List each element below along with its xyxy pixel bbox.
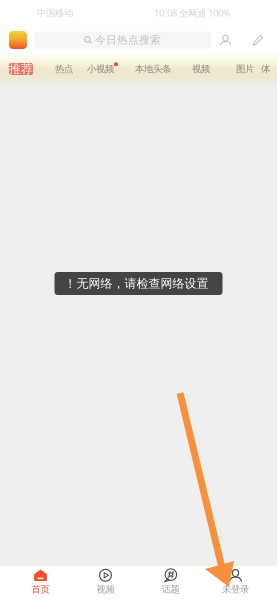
button[interactable]: 图片 [236,63,254,75]
staticText: 无网络，请检查网络设置 [76,276,208,291]
staticText: 推荐 [9,62,33,76]
button[interactable]: 视频 [73,566,138,600]
staticText: 视频 [96,584,114,595]
button[interactable]: 首页 [8,566,73,600]
staticText: 热点 [55,63,73,75]
staticText: 今日热点搜索 [95,33,161,46]
button[interactable]: 热点 [55,63,73,75]
button[interactable]: 发布 [252,34,263,45]
staticText: 视频 [192,63,210,75]
staticText: 未登录 [222,584,249,595]
staticText: 图片 [236,63,254,75]
button[interactable]: 应用图标 [9,31,27,49]
staticText: 小视频 [87,63,114,75]
button[interactable]: 本地头条 [135,63,171,75]
staticText: 话题 [161,584,179,595]
button[interactable]: 今日热点搜索 [34,31,211,48]
button[interactable]: 体 [261,63,270,75]
staticText: ! [68,275,71,291]
button[interactable]: 我的 [220,34,231,45]
button[interactable]: 小视频 [87,63,114,75]
staticText: 中国移动 [37,7,73,19]
staticText: 本地头条 [135,63,171,75]
staticText: 体 [261,63,270,75]
staticText: 首页 [31,584,49,595]
staticText: 10:08 全网通 100% [154,7,231,19]
button[interactable]: 推荐 [9,63,33,75]
button[interactable]: 未登录 [203,566,268,600]
button[interactable]: 话题 [138,566,203,600]
button[interactable]: 视频 [192,63,210,75]
